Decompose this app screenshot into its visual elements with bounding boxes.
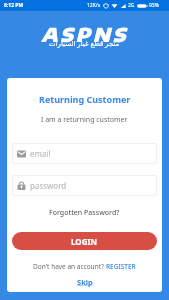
staticText: Returning Customer xyxy=(39,93,131,105)
staticText: 2G xyxy=(128,2,135,9)
staticText: متجر قطع غيار السيارات xyxy=(49,39,120,49)
button[interactable]: password xyxy=(12,175,157,196)
staticText: 12K/s xyxy=(87,2,101,9)
staticText: REGISTER xyxy=(106,262,136,271)
staticText: 6:12 PM xyxy=(4,2,24,9)
button[interactable]: Forgotten Password? xyxy=(47,206,122,220)
staticText: 93% xyxy=(149,2,159,9)
staticText: Don't have an account? xyxy=(33,262,106,271)
staticText: email xyxy=(30,148,51,159)
staticText: I am a returning customer xyxy=(41,115,128,125)
button[interactable]: Don't have an account? xyxy=(33,262,136,271)
button[interactable]: Skip xyxy=(77,277,93,287)
button[interactable]: email xyxy=(12,143,157,164)
button[interactable]: LOGIN xyxy=(12,232,157,250)
staticText: password xyxy=(30,180,67,191)
staticText: LOGIN xyxy=(71,236,98,247)
staticText: ASPNS xyxy=(41,22,129,46)
